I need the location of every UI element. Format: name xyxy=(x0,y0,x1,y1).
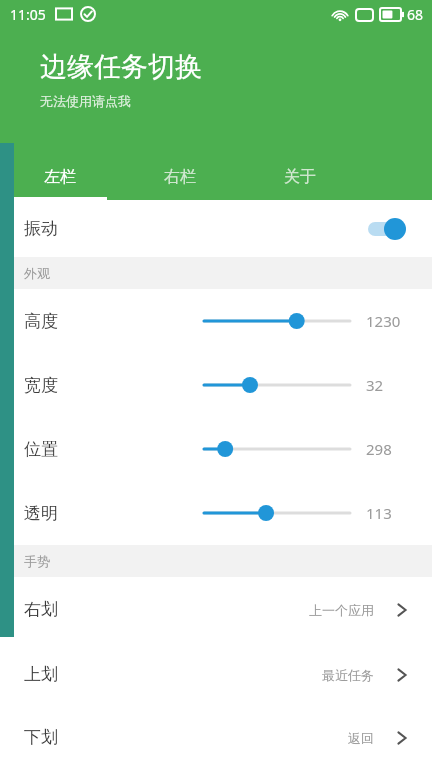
staticText: 关于 xyxy=(284,167,316,187)
button[interactable]: 关于 xyxy=(240,154,360,200)
button[interactable]: 宽度 xyxy=(0,353,432,417)
staticText: 右栏 xyxy=(164,167,196,187)
staticText: 1230 xyxy=(366,311,401,331)
button[interactable]: 左栏 xyxy=(0,154,120,200)
staticText: 11:05 xyxy=(10,5,46,24)
staticText: 上一个应用 xyxy=(309,602,374,618)
button[interactable]: 振动 xyxy=(0,200,432,257)
staticText: 68 xyxy=(407,5,424,24)
staticText: 宽度 xyxy=(24,375,58,396)
button[interactable]: 下划 xyxy=(0,707,432,768)
staticText: 振动 xyxy=(24,218,58,239)
staticText: 位置 xyxy=(24,439,58,460)
staticText: 左栏 xyxy=(44,167,76,187)
button[interactable]: 高度 xyxy=(0,289,432,353)
staticText: 边缘任务切换 xyxy=(40,50,202,84)
button[interactable]: 右栏 xyxy=(120,154,240,200)
staticText: 上划 xyxy=(24,664,58,685)
staticText: 32 xyxy=(366,375,384,395)
staticText: 下划 xyxy=(24,727,58,748)
staticText: 高度 xyxy=(24,311,58,332)
other: 下划 xyxy=(392,728,412,748)
staticText: 298 xyxy=(366,439,392,459)
staticText: 返回 xyxy=(348,730,374,746)
staticText: 113 xyxy=(366,503,392,523)
staticText: 无法使用请点我 xyxy=(40,93,131,109)
staticText: 最近任务 xyxy=(322,667,374,683)
button[interactable]: 位置 xyxy=(0,417,432,481)
button[interactable]: 上划 xyxy=(0,642,432,707)
staticText: 手势 xyxy=(24,553,50,569)
button[interactable]: 右划 xyxy=(0,577,432,642)
staticText: 右划 xyxy=(24,599,58,620)
staticText: 外观 xyxy=(24,265,50,281)
staticText: 透明 xyxy=(24,503,58,524)
other: 右划 xyxy=(392,600,412,620)
other: 上划 xyxy=(392,665,412,685)
button[interactable]: 透明 xyxy=(0,481,432,545)
